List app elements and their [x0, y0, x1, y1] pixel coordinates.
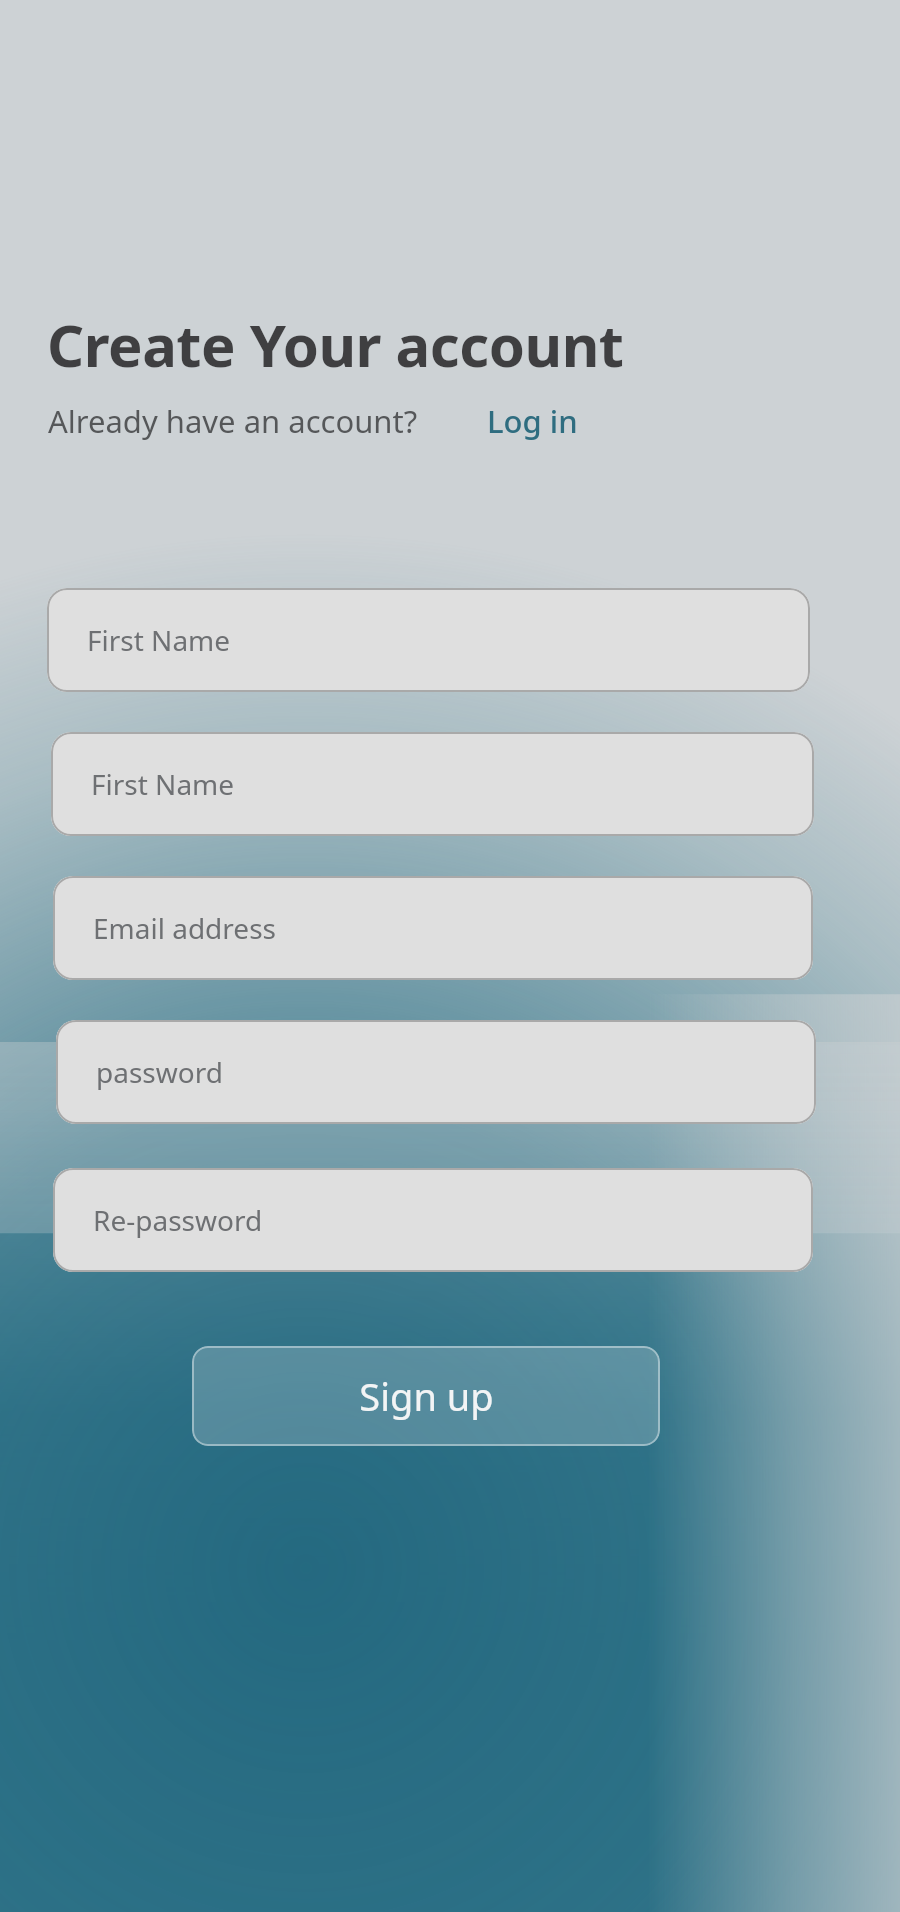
staticText: Sign up [359, 1370, 494, 1422]
button[interactable]: Log in [483, 396, 582, 446]
button[interactable]: First Name [47, 588, 810, 692]
staticText: Log in [487, 400, 578, 442]
staticText: First Name [87, 621, 231, 659]
staticText: Already have an account? [48, 400, 418, 442]
staticText: First Name [91, 765, 235, 803]
button[interactable]: Sign up [192, 1346, 660, 1446]
button[interactable]: Re-password [53, 1168, 813, 1272]
button[interactable]: password [56, 1020, 816, 1124]
staticText: Create Your account [47, 305, 624, 384]
button[interactable]: First Name [51, 732, 814, 836]
staticText: Email address [93, 909, 276, 947]
button[interactable]: Email address [53, 876, 813, 980]
staticText: password [96, 1053, 223, 1091]
staticText: Re-password [93, 1201, 263, 1239]
